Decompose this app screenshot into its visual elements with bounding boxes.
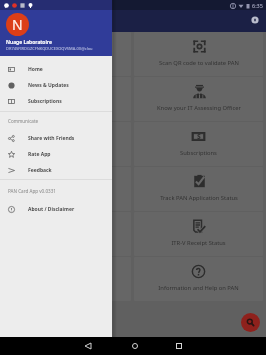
button[interactable]: S bbox=[3, 122, 131, 166]
staticText: ITR-V Receipt Status bbox=[171, 239, 226, 247]
staticText: N bbox=[12, 15, 23, 34]
staticText: News & Updates bbox=[28, 82, 69, 89]
staticText: 6:35 bbox=[252, 2, 263, 9]
button[interactable]: ITR-V Receipt Status bbox=[3, 212, 131, 256]
staticText: PAN Card App v0.0331 bbox=[8, 188, 56, 194]
staticText: Know your IT Assessing Officer bbox=[25, 104, 109, 112]
button[interactable]: News & Updates bbox=[0, 77, 112, 93]
button[interactable]: Track PAN Application Status bbox=[3, 167, 131, 211]
button[interactable]: Know your IT Assessing Officer bbox=[3, 77, 131, 121]
staticText: About / Disclaimer bbox=[28, 206, 75, 213]
button[interactable]: Search bbox=[241, 313, 260, 332]
button[interactable]: ITR-V Receipt Status bbox=[134, 212, 263, 256]
staticText: Nuage Laboratoire bbox=[6, 39, 52, 46]
button[interactable]: Help bbox=[249, 14, 261, 26]
button[interactable]: Information and Help on PAN bbox=[3, 257, 131, 301]
button[interactable]: Feedback bbox=[0, 162, 112, 178]
staticText: DR74SFIRDGZCFNKQDUCEXOQV5MA-00@clou bbox=[6, 46, 93, 51]
staticText: Subscriptions bbox=[49, 149, 86, 157]
button[interactable]: Subscriptions bbox=[0, 93, 112, 109]
staticText: Track PAN Application Status bbox=[160, 194, 238, 202]
button[interactable]: Information and Help on PAN bbox=[134, 257, 263, 301]
staticText: Subscriptions bbox=[28, 98, 62, 105]
button[interactable]: Share with Friends bbox=[0, 130, 112, 146]
staticText: Scan QR code to validate PAN bbox=[159, 59, 239, 67]
button[interactable]: Back bbox=[80, 338, 96, 354]
staticText: Rate App bbox=[28, 151, 51, 158]
staticText: Feedback bbox=[28, 167, 52, 174]
button[interactable]: Home bbox=[0, 61, 112, 77]
button[interactable]: Know your IT Assessing Officer bbox=[134, 77, 263, 121]
staticText: Information and Help on PAN bbox=[158, 284, 239, 292]
staticText: Subscriptions bbox=[180, 149, 217, 157]
button[interactable]: Track PAN Application Status bbox=[134, 167, 263, 211]
staticText: Know your IT Assessing Officer bbox=[157, 104, 241, 112]
button[interactable]: Rate App bbox=[0, 146, 112, 162]
button[interactable]: S bbox=[134, 122, 263, 166]
button[interactable]: Home bbox=[127, 338, 143, 354]
button[interactable]: About / Disclaimer bbox=[0, 201, 112, 217]
button[interactable]: Scan QR code to validate PAN bbox=[134, 32, 263, 76]
staticText: S bbox=[197, 132, 201, 141]
button[interactable]: Recent apps bbox=[171, 338, 187, 354]
staticText: Home bbox=[28, 66, 43, 73]
staticText: Communicate bbox=[8, 118, 39, 124]
staticText: Share with Friends bbox=[28, 135, 75, 142]
staticText: S bbox=[66, 132, 70, 141]
button[interactable]: Scan QR code to validate PAN bbox=[3, 32, 131, 76]
